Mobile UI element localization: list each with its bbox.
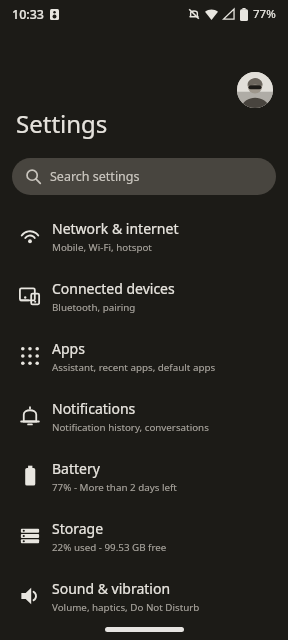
button[interactable]: Search settings: [12, 158, 276, 195]
button[interactable]: Apps: [0, 326, 288, 386]
staticText: 22% used - 99.53 GB free: [52, 541, 167, 554]
staticText: Settings: [16, 107, 108, 140]
staticText: Notification history, conversations: [52, 421, 209, 434]
staticText: Bluetooth, pairing: [52, 301, 136, 314]
staticText: Assistant, recent apps, default apps: [52, 361, 216, 374]
button[interactable]: Notifications: [0, 386, 288, 446]
button[interactable]: Network & internet: [0, 206, 288, 266]
button[interactable]: Connected devices: [0, 266, 288, 326]
staticText: Volume, haptics, Do Not Disturb: [52, 601, 200, 614]
staticText: 10:33: [12, 6, 45, 23]
staticText: Notifications: [52, 399, 136, 418]
staticText: Apps: [52, 339, 85, 358]
staticText: Network & internet: [52, 219, 179, 238]
staticText: Mobile, Wi-Fi, hotspot: [52, 241, 152, 254]
staticText: Storage: [52, 519, 104, 538]
staticText: 77%: [253, 6, 276, 22]
button[interactable]: [237, 72, 273, 108]
staticText: Connected devices: [52, 279, 175, 298]
staticText: Search settings: [50, 168, 140, 185]
button[interactable]: Storage: [0, 506, 288, 566]
button[interactable]: Battery: [0, 446, 288, 506]
button[interactable]: [105, 627, 184, 632]
staticText: Battery: [52, 459, 100, 478]
staticText: 77% - More than 2 days left: [52, 481, 177, 494]
staticText: Sound & vibration: [52, 579, 171, 598]
button[interactable]: Sound & vibration: [0, 566, 288, 626]
